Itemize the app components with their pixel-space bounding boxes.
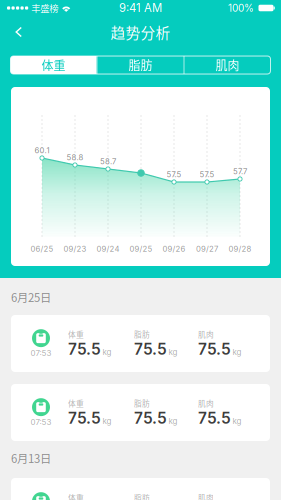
button[interactable]: 07:53 [11,384,270,441]
staticText: 07:53 [30,417,51,427]
button[interactable]: 07:53 [11,315,270,372]
staticText: kg [102,416,111,426]
staticText: 58.7 [100,157,116,166]
staticText: 75.5 [134,409,167,427]
staticText: 肌肉 [215,56,239,74]
staticText: 57.5 [199,170,214,179]
staticText: 58.8 [66,153,83,162]
staticText: kg [168,416,177,426]
staticText: 体重 [68,397,84,409]
staticText: 57.5 [166,170,181,179]
staticText: 脂肪 [134,491,150,500]
staticText: 09/24 [96,244,119,254]
button[interactable]: 体重 [10,56,96,74]
staticText: kg [168,347,177,357]
staticText: 07:53 [30,348,51,358]
staticText: 9:41 AM [119,1,162,15]
button[interactable]: 肌肉 [184,56,270,74]
button[interactable]: 07:53 [11,478,270,500]
staticText: 体重 [68,328,84,340]
staticText: 丰盛榜 [31,1,58,15]
staticText: 09/27 [196,244,218,254]
staticText: 75.5 [68,340,101,358]
staticText: 09/25 [129,244,152,254]
staticText: 75.5 [198,409,231,427]
staticText: 75.5 [68,409,101,427]
staticText: 6月13日 [11,450,51,466]
staticText: 09/28 [228,244,251,254]
staticText: 脂肪 [128,56,152,74]
staticText: 脂肪 [134,328,150,340]
staticText: 06/25 [30,244,53,254]
staticText: 肌肉 [198,397,214,409]
staticText: 体重 [41,56,65,74]
staticText: 57.7 [233,167,247,176]
staticText: 肌肉 [198,491,214,500]
staticText: kg [232,347,241,357]
staticText: 趋势分析 [110,21,170,43]
staticText: kg [102,347,111,357]
staticText: 75.5 [134,340,167,358]
staticText: 100% [228,2,254,14]
staticText: 脂肪 [134,397,150,409]
button[interactable]: 返回 [0,17,38,46]
button[interactable]: 脂肪 [97,56,183,74]
staticText: 09/23 [63,244,86,254]
staticText: 60.1 [34,146,49,155]
staticText: 09/26 [162,244,185,254]
staticText: kg [232,416,241,426]
staticText: 6月25日 [11,289,51,305]
staticText: 体重 [68,491,84,500]
staticText: 75.5 [198,340,231,358]
staticText: 肌肉 [198,328,214,340]
